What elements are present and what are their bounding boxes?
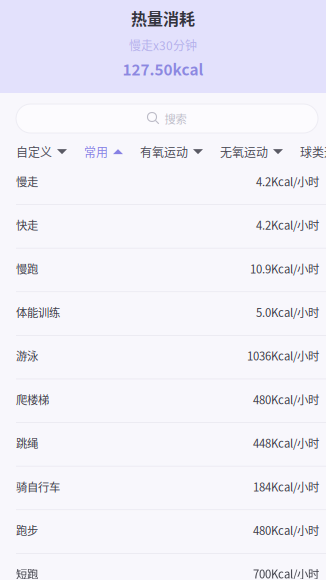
staticText: 480Kcal/小时 [253,391,319,407]
staticText: 慢走 [16,173,38,189]
button[interactable]: 短跑 [0,554,326,580]
button[interactable]: 慢走 [0,161,326,205]
staticText: 快走 [16,217,38,233]
staticText: 慢走x30分钟 [129,36,197,54]
button[interactable]: 骑自行车 [0,466,326,510]
button[interactable]: 快走 [0,205,326,248]
button[interactable]: 爬楼梯 [0,379,326,423]
staticText: 搜索 [164,110,186,127]
staticText: 10.9Kcal/小时 [250,260,319,277]
staticText: 无氧运动 [220,143,268,160]
button[interactable]: 跑步 [0,510,326,554]
staticText: 常用 [84,143,108,160]
button[interactable]: 有氧运动 [140,129,203,165]
staticText: 热量消耗 [131,6,195,30]
button[interactable]: 游泳 [0,336,326,379]
button[interactable]: 慢跑 [0,248,326,292]
button[interactable]: 无氧运动 [220,129,283,165]
staticText: 1036Kcal/小时 [247,347,319,364]
staticText: 短跑 [16,565,38,580]
staticText: 5.0Kcal/小时 [256,304,319,320]
button[interactable]: 体能训练 [0,292,326,336]
button[interactable]: 球类运动 [300,129,326,165]
staticText: 700Kcal/小时 [253,565,319,580]
staticText: 127.50kcal [122,58,203,80]
staticText: 爬楼梯 [16,391,49,407]
staticText: 184Kcal/小时 [253,478,319,495]
staticText: 体能训练 [16,304,60,320]
button[interactable]: 常用 [84,129,123,165]
staticText: 480Kcal/小时 [253,522,319,538]
button[interactable]: 自定义 [16,129,67,165]
staticText: 4.2Kcal/小时 [256,173,319,189]
staticText: 骑自行车 [16,478,60,495]
staticText: 跑步 [16,522,38,538]
staticText: 自定义 [16,143,52,160]
staticText: 448Kcal/小时 [253,435,319,451]
staticText: 有氧运动 [140,143,188,160]
staticText: 游泳 [16,347,38,364]
staticText: 跳绳 [16,435,38,451]
staticText: 慢跑 [16,260,38,277]
staticText: 球类运动 [300,143,326,160]
staticText: 4.2Kcal/小时 [256,217,319,233]
button[interactable]: 跳绳 [0,423,326,466]
